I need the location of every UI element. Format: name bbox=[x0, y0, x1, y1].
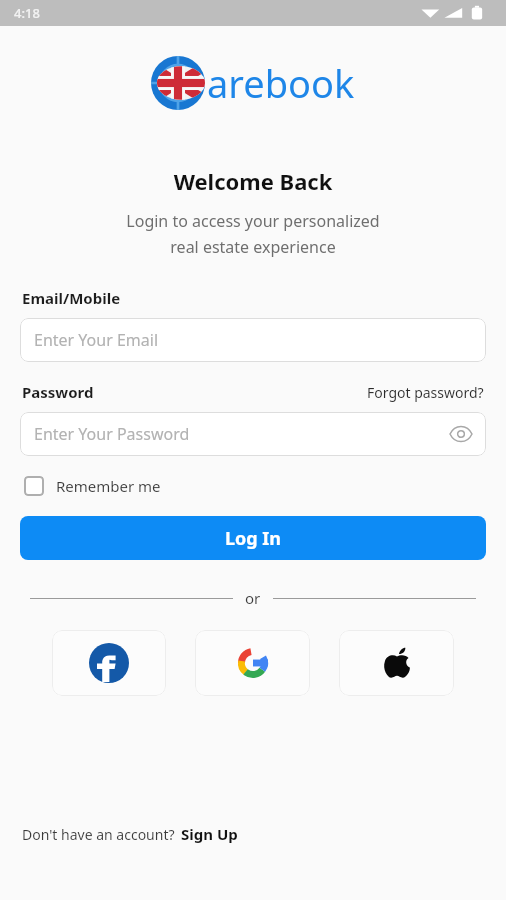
button[interactable]: Sign in with Google bbox=[195, 630, 310, 696]
button[interactable]: Sign Up bbox=[181, 824, 238, 844]
staticText: arebook bbox=[207, 57, 355, 109]
staticText: Login to access your personalized real e… bbox=[0, 210, 506, 258]
button[interactable]: Forgot password? bbox=[367, 383, 484, 402]
staticText: Log In bbox=[225, 526, 282, 551]
other: Show password bbox=[450, 427, 472, 441]
staticText: Password bbox=[22, 382, 94, 402]
button[interactable]: Enter Your Email bbox=[20, 318, 486, 362]
button[interactable]: Sign in with Apple bbox=[339, 630, 454, 696]
staticText: Don't have an account? bbox=[22, 825, 175, 844]
button[interactable]: Enter Your Password bbox=[20, 412, 486, 456]
staticText: Enter Your Password bbox=[34, 423, 190, 445]
staticText: Remember me bbox=[56, 476, 161, 496]
staticText: Sign Up bbox=[181, 824, 238, 844]
staticText: Forgot password? bbox=[367, 383, 484, 402]
button[interactable]: Log In bbox=[20, 516, 486, 560]
staticText: 4:18 bbox=[14, 4, 40, 22]
button[interactable]: Sign in with Facebook bbox=[52, 630, 166, 696]
button[interactable]: Remember me bbox=[22, 472, 163, 500]
staticText: Enter Your Email bbox=[34, 329, 159, 351]
staticText: or bbox=[245, 588, 261, 608]
staticText: Welcome Back bbox=[0, 166, 506, 196]
staticText: Email/Mobile bbox=[22, 288, 121, 308]
